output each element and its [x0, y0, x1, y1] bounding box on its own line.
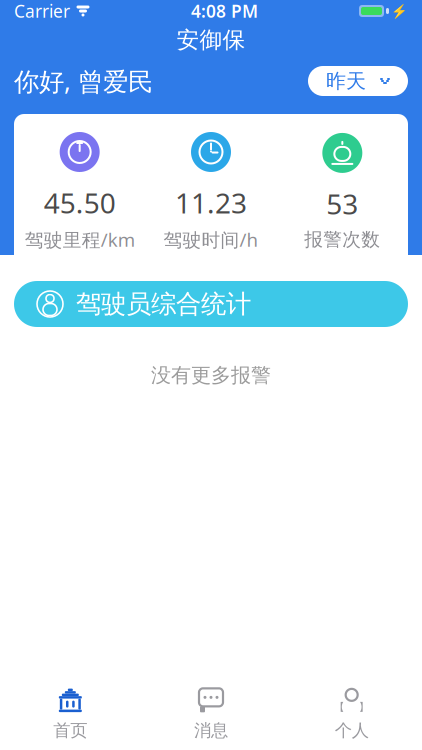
staticText: 53 — [326, 185, 358, 222]
staticText: Carrier — [14, 0, 70, 22]
staticText: ⚡ — [391, 3, 408, 19]
staticText: 11.23 — [175, 184, 247, 221]
button[interactable]: 昨天 — [308, 66, 408, 96]
staticText: 首页 — [53, 720, 87, 741]
staticText: 报警次数 — [304, 228, 380, 251]
staticText: 45.50 — [44, 184, 116, 221]
button[interactable]: 驾驶员综合统计 — [14, 281, 408, 327]
button[interactable]: 首页 — [0, 680, 141, 748]
button[interactable]: 消息 — [141, 680, 281, 748]
staticText: 驾驶时间/h — [163, 227, 258, 252]
staticText: 没有更多报警 — [151, 363, 271, 388]
staticText: 驾驶里程/km — [25, 227, 135, 252]
staticText: 个人 — [335, 720, 369, 741]
staticText: 驾驶员综合统计 — [76, 288, 251, 319]
staticText: 安御保 — [176, 26, 245, 54]
staticText: 消息 — [194, 720, 228, 741]
staticText: 昨天 — [326, 69, 366, 93]
button[interactable]: 个人 — [281, 680, 422, 748]
staticText: 4:08 PM — [191, 0, 258, 22]
staticText: 你好, 曾爱民 — [14, 64, 153, 98]
